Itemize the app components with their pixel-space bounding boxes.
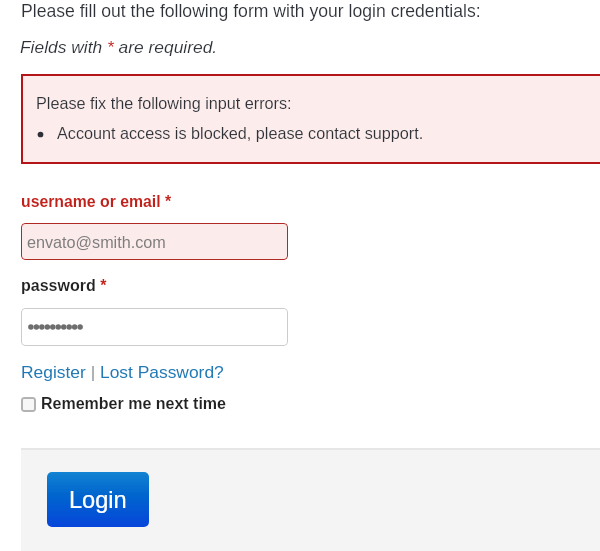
- staticText: Please fix the following input errors:: [36, 94, 292, 112]
- button[interactable]: Lost Password?: [100, 362, 224, 381]
- staticText: Remember me next time: [41, 395, 226, 413]
- staticText: |: [86, 362, 96, 381]
- staticText: Login: [69, 487, 127, 513]
- staticText: Please fill out the following form with …: [21, 1, 481, 21]
- staticText: Fields with * are required.: [20, 37, 218, 56]
- staticText: password *: [21, 277, 107, 295]
- button[interactable]: Login: [47, 472, 149, 527]
- button[interactable]: Register: [21, 362, 86, 381]
- staticText: username or email *: [21, 193, 172, 211]
- button[interactable]: Remember me next time: [21, 395, 226, 413]
- button[interactable]: password input: [21, 308, 288, 346]
- staticText: Account access is blocked, please contac…: [57, 124, 424, 142]
- staticText: envato@smith.com: [27, 233, 166, 251]
- button[interactable]: username or email input: [21, 223, 288, 260]
